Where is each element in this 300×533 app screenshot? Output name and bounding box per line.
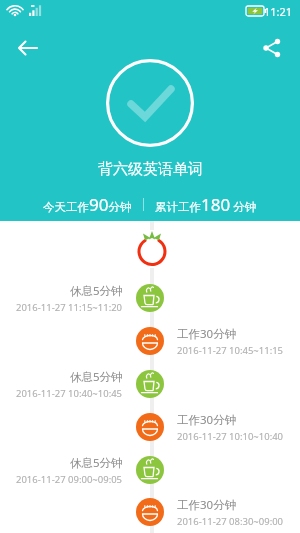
button[interactable]: 工作30分钟 <box>0 491 300 533</box>
staticText: 休息5分钟 <box>70 369 123 385</box>
staticText: 工作30分钟 <box>177 326 237 342</box>
staticText: 累计工作180 分钟 <box>155 193 257 216</box>
staticText: 休息5分钟 <box>70 283 123 299</box>
button[interactable]: 休息5分钟 <box>0 362 300 405</box>
staticText: 2016-11-27 11:15~11:20 <box>16 301 123 314</box>
button[interactable]: 休息5分钟 <box>0 448 300 491</box>
staticText: 工作30分钟 <box>177 497 237 513</box>
button[interactable]: Share <box>252 28 292 68</box>
staticText: 2016-11-27 09:00~09:05 <box>16 473 123 486</box>
staticText: 工作30分钟 <box>177 412 237 428</box>
staticText: 2016-11-27 10:40~10:45 <box>16 387 123 400</box>
staticText: 11:21 <box>264 4 293 19</box>
staticText: 2016-11-27 10:10~10:40 <box>177 430 284 443</box>
button[interactable]: 工作30分钟 <box>0 405 300 448</box>
button[interactable]: 休息5分钟 <box>0 276 300 319</box>
button[interactable]: 工作30分钟 <box>0 319 300 362</box>
button[interactable]: Back <box>8 28 48 68</box>
staticText: 休息5分钟 <box>70 455 123 471</box>
staticText: 2016-11-27 10:45~11:15 <box>177 344 284 357</box>
staticText: 背六级英语单词 <box>98 160 203 179</box>
staticText: 2016-11-27 08:30~09:00 <box>177 515 284 528</box>
staticText: 今天工作90分钟 <box>43 193 132 216</box>
